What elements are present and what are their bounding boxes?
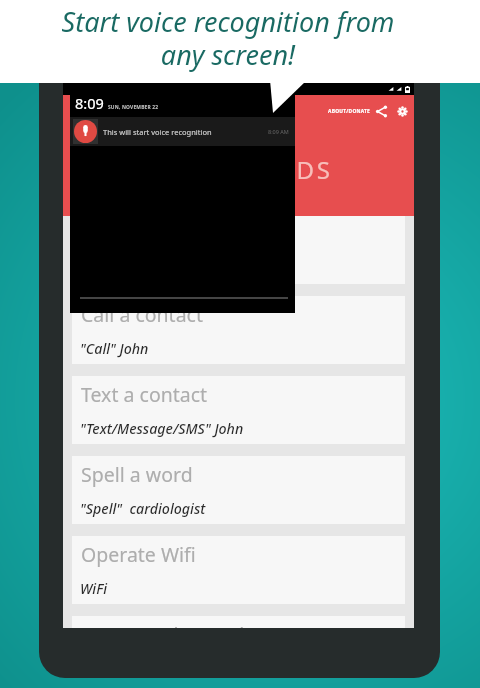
staticText: SUN, NOVEMBER 22: [108, 104, 159, 111]
staticText: "Call" John: [80, 339, 149, 358]
button[interactable]: Spell a word: [72, 456, 405, 524]
staticText: Call a contact: [81, 301, 203, 328]
staticText: Text a contact: [81, 381, 208, 408]
staticText: "Text/Message/SMS" John: [80, 419, 244, 438]
button[interactable]: Tell the time: [72, 216, 405, 284]
staticText: 8:09 AM: [268, 128, 289, 135]
button[interactable]: Text a contact: [72, 376, 405, 444]
button[interactable]: Settings: [397, 106, 408, 117]
staticText: WiFi: [80, 579, 107, 598]
staticText: Spell a word: [81, 461, 193, 488]
staticText: Start voice recognition from any screen!: [0, 3, 468, 73]
staticText: Operate Bluetooth: [81, 621, 252, 628]
button[interactable]: ABOUT/DONATE: [326, 108, 373, 115]
staticText: VOICE COMMANDS: [79, 153, 333, 186]
staticText: 8:09: [75, 93, 104, 113]
staticText: ABOUT/DONATE: [328, 108, 371, 115]
staticText: "Spell" cardiologist: [80, 499, 206, 518]
button[interactable]: Share: [375, 105, 388, 118]
button[interactable]: Operate Wifi: [72, 536, 405, 604]
button[interactable]: Call a contact: [72, 296, 405, 364]
staticText: This will start voice recognition: [103, 127, 212, 137]
staticText: Operate Wifi: [81, 541, 196, 568]
